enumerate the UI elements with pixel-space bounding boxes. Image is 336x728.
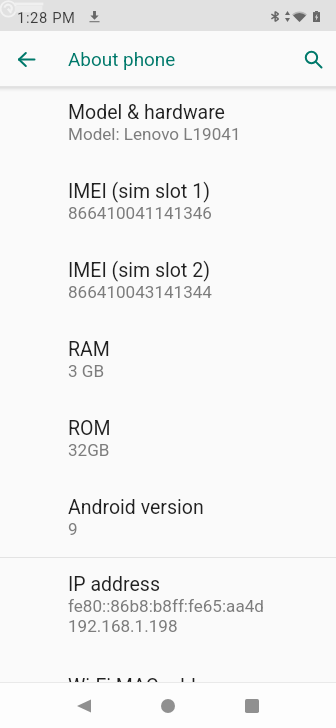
button[interactable]: ROM [0,399,336,478]
staticText: Model & hardware [68,101,225,124]
button[interactable]: Android version [0,478,336,557]
staticText: 866410041141346 [68,203,212,223]
staticText: 9 [68,519,78,539]
staticText: Model: Lenovo L19041 [68,124,241,144]
button[interactable]: Home [126,683,210,728]
staticText: IMEI (sim slot 2) [68,259,210,282]
staticText: 1:28 PM [17,9,76,26]
button[interactable]: IP address [0,558,336,654]
staticText: IMEI (sim slot 1) [68,180,210,203]
staticText: IP address [68,573,161,596]
button[interactable]: IMEI (sim slot 2) [0,241,336,320]
button[interactable]: Wi-Fi MAC address [0,654,336,716]
staticText: Android version [68,496,204,519]
staticText: ROM [68,417,111,440]
button[interactable]: IMEI (sim slot 1) [0,162,336,241]
staticText: fe80::86b8:b8ff:fe65:aa4d [68,596,264,616]
staticText: Wi-Fi MAC address [68,675,233,698]
button[interactable]: Search [293,39,333,79]
staticText: 192.168.1.198 [68,616,178,636]
staticText: 866410043141344 [68,282,212,302]
staticText: RAM [68,338,110,361]
button[interactable]: Recents [210,683,294,728]
button[interactable]: Back [6,39,46,79]
button[interactable]: Back [42,683,126,728]
staticText: 3 GB [68,361,105,381]
staticText: About phone [68,48,176,70]
staticText: 32GB [68,440,110,460]
button[interactable]: Model & hardware [0,83,336,162]
button[interactable]: RAM [0,320,336,399]
